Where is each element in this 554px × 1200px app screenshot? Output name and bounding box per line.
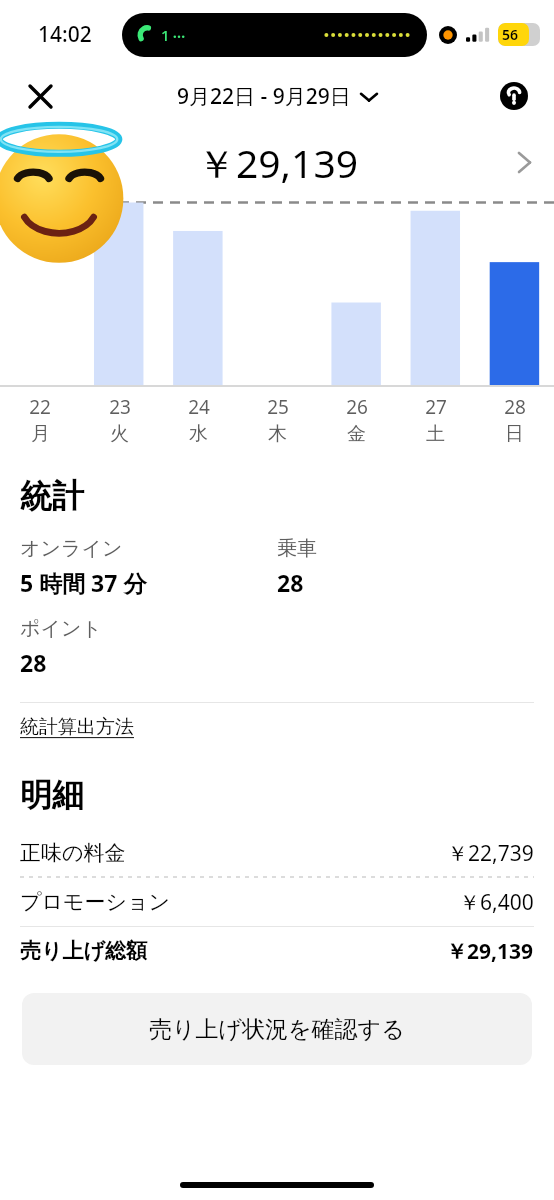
- staticText: 明細: [20, 775, 84, 815]
- staticText: 売り上げ状況を確認する: [149, 1015, 405, 1044]
- staticText: 5 時間 37 分: [20, 567, 147, 598]
- staticText: 28: [277, 567, 304, 598]
- staticText: 22: [29, 394, 51, 420]
- button[interactable]: 24: [159, 394, 238, 446]
- staticText: 27: [425, 394, 447, 420]
- staticText: ポイント: [20, 616, 102, 641]
- staticText: 26: [346, 394, 368, 420]
- button[interactable]: 正味の料金: [20, 829, 534, 877]
- staticText: ￥29,139: [197, 136, 358, 189]
- button[interactable]: 9月22日 - 9月29日: [177, 82, 377, 111]
- staticText: オンライン: [20, 536, 123, 561]
- staticText: 火: [110, 422, 129, 446]
- staticText: 日: [505, 422, 524, 446]
- staticText: 56: [502, 25, 519, 44]
- button[interactable]: 22: [0, 394, 80, 446]
- button[interactable]: ￥29,139: [0, 124, 554, 200]
- staticText: 木: [268, 422, 287, 446]
- staticText: 金: [347, 422, 366, 446]
- button[interactable]: プロモーション: [20, 878, 534, 926]
- staticText: ￥6,400: [459, 888, 534, 917]
- button[interactable]: 27: [396, 394, 475, 446]
- staticText: 正味の料金: [20, 840, 126, 866]
- staticText: 統計: [20, 476, 84, 516]
- staticText: 1: [161, 25, 170, 45]
- staticText: 28: [20, 647, 47, 678]
- staticText: ￥22,739: [447, 839, 534, 868]
- button[interactable]: 23: [80, 394, 159, 446]
- staticText: 土: [426, 422, 445, 446]
- staticText: 乗車: [277, 536, 317, 561]
- button[interactable]: Help: [492, 74, 536, 118]
- button[interactable]: 統計算出方法: [20, 715, 134, 739]
- button[interactable]: Close: [16, 72, 64, 120]
- button[interactable]: 26: [317, 394, 396, 446]
- button[interactable]: 売り上げ状況を確認する: [22, 993, 532, 1065]
- staticText: ￥29,139: [446, 937, 534, 966]
- button[interactable]: 25: [238, 394, 317, 446]
- staticText: 23: [109, 394, 131, 420]
- staticText: 9月22日 - 9月29日: [177, 82, 351, 111]
- staticText: 月: [31, 422, 50, 446]
- staticText: 水: [189, 422, 208, 446]
- staticText: 25: [267, 394, 289, 420]
- staticText: プロモーション: [20, 889, 170, 915]
- staticText: 28: [504, 394, 526, 420]
- staticText: 売り上げ総額: [20, 938, 147, 964]
- staticText: 24: [188, 394, 210, 420]
- staticText: 14:02: [38, 20, 92, 49]
- button[interactable]: 28: [475, 394, 554, 446]
- button[interactable]: 売り上げ総額: [20, 927, 534, 975]
